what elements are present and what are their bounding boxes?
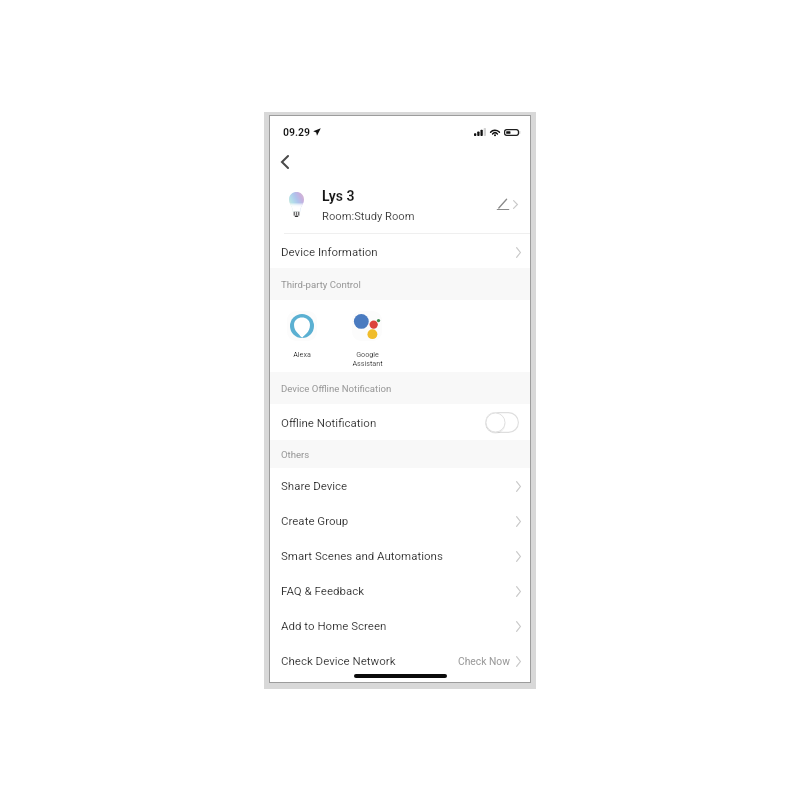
- staticText: 09.29: [283, 126, 311, 138]
- staticText: FAQ & Feedback: [281, 584, 365, 597]
- button[interactable]: Google Assistant: [345, 300, 389, 368]
- button[interactable]: Add to Home Screen: [270, 608, 530, 643]
- staticText: Others: [281, 449, 310, 460]
- button[interactable]: Offline Notification: [270, 404, 530, 440]
- staticText: Check Device Network: [281, 654, 396, 667]
- staticText: Device Information: [281, 245, 378, 258]
- staticText: Device Offline Notification: [281, 383, 392, 394]
- button[interactable]: Smart Scenes and Automations: [270, 538, 530, 573]
- button[interactable]: FAQ & Feedback: [270, 573, 530, 608]
- staticText: Room:Study Room: [322, 210, 415, 223]
- staticText: Add to Home Screen: [281, 619, 387, 632]
- staticText: Alexa: [293, 350, 311, 358]
- staticText: Create Group: [281, 514, 349, 527]
- staticText: Offline Notification: [281, 416, 377, 429]
- button[interactable]: Alexa: [280, 300, 324, 358]
- button[interactable]: Check Device Network: [270, 643, 530, 678]
- staticText: Lys 3: [322, 188, 355, 204]
- button[interactable]: Lys 3: [270, 176, 530, 233]
- button[interactable]: Share Device: [270, 468, 530, 503]
- staticText: Third-party Control: [281, 279, 361, 290]
- staticText: Google Assistant: [352, 350, 383, 368]
- button[interactable]: Offline Notification toggle: [485, 412, 519, 433]
- staticText: Check Now: [458, 655, 510, 667]
- button[interactable]: Edit name: [495, 197, 510, 212]
- staticText: Smart Scenes and Automations: [281, 549, 443, 562]
- button[interactable]: Device Information: [270, 234, 530, 268]
- staticText: Share Device: [281, 479, 348, 492]
- button[interactable]: Create Group: [270, 503, 530, 538]
- button[interactable]: Back: [273, 150, 297, 174]
